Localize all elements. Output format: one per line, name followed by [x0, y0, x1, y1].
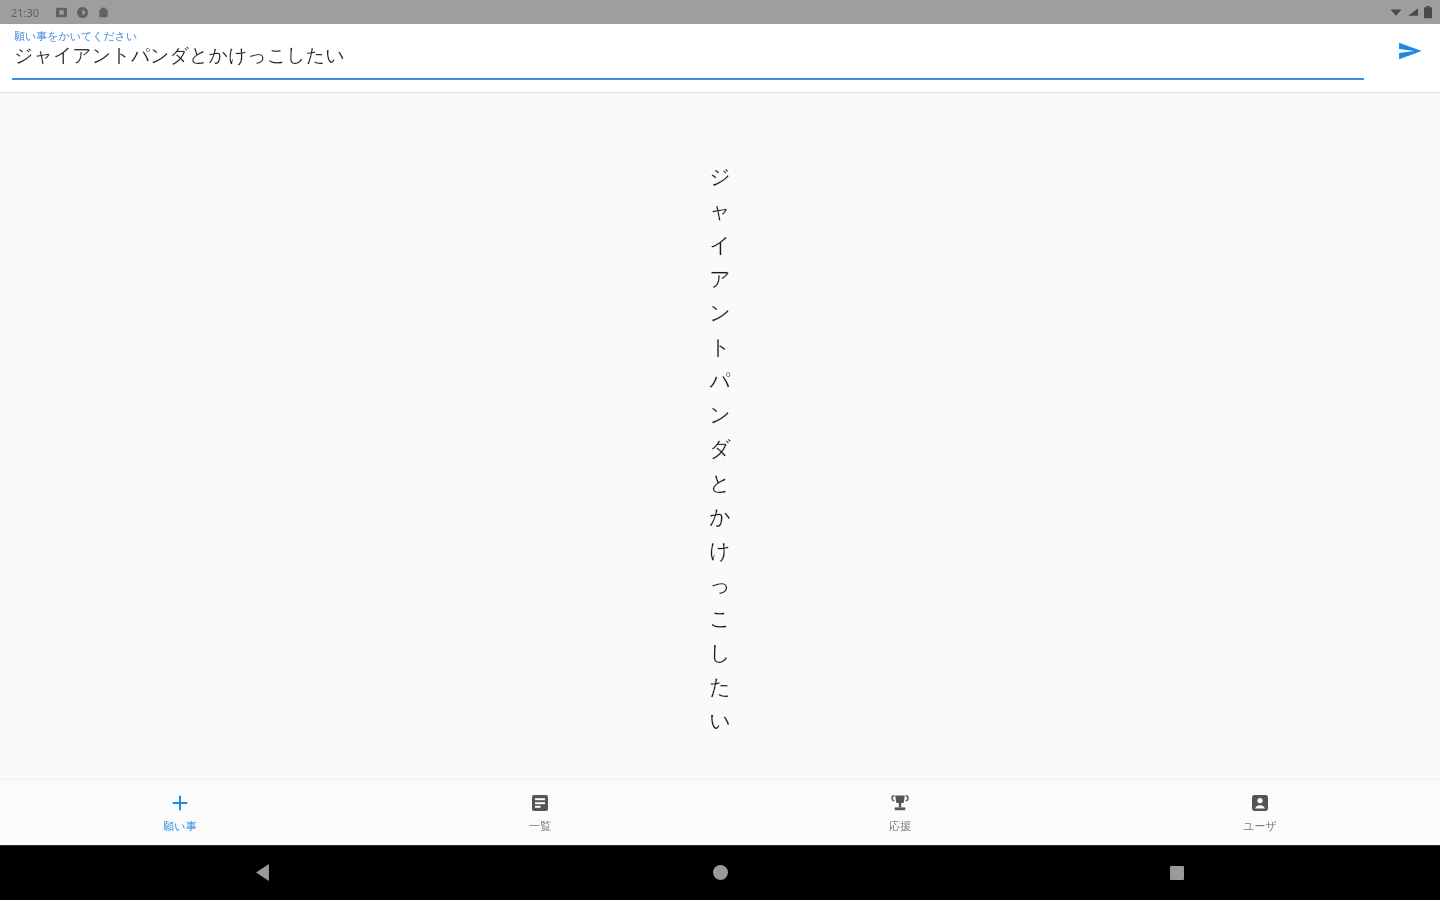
staticText: た: [709, 674, 731, 700]
button[interactable]: 一覧: [360, 780, 720, 845]
staticText: ユーザ: [1243, 819, 1277, 833]
staticText: と: [709, 470, 731, 496]
staticText: ア: [709, 266, 731, 292]
staticText: パ: [709, 368, 731, 394]
staticText: ダ: [709, 436, 731, 462]
button[interactable]: Home: [690, 845, 750, 900]
button[interactable]: 願い事: [0, 780, 360, 845]
staticText: 願い事をかいてください: [14, 29, 138, 43]
button[interactable]: ユーザ: [1080, 780, 1440, 845]
staticText: こ: [709, 606, 731, 632]
staticText: 願い事: [163, 819, 197, 833]
staticText: ン: [709, 402, 731, 428]
button[interactable]: Back: [233, 845, 293, 900]
staticText: 21:30: [11, 5, 40, 20]
staticText: ャ: [709, 198, 731, 224]
staticText: ジャイアントパンダとかけっこしたい: [14, 44, 345, 68]
staticText: し: [709, 640, 731, 666]
staticText: ト: [709, 334, 731, 360]
button[interactable]: 送信: [1380, 24, 1440, 78]
staticText: い: [709, 708, 731, 734]
staticText: 応援: [889, 819, 911, 833]
staticText: 一覧: [529, 819, 551, 833]
staticText: っ: [709, 572, 731, 598]
staticText: ン: [709, 300, 731, 326]
staticText: か: [709, 504, 731, 530]
button[interactable]: Recents: [1147, 845, 1207, 900]
button[interactable]: 応援: [720, 780, 1080, 845]
staticText: イ: [709, 232, 731, 258]
staticText: ジ: [709, 164, 731, 190]
staticText: け: [709, 538, 731, 564]
